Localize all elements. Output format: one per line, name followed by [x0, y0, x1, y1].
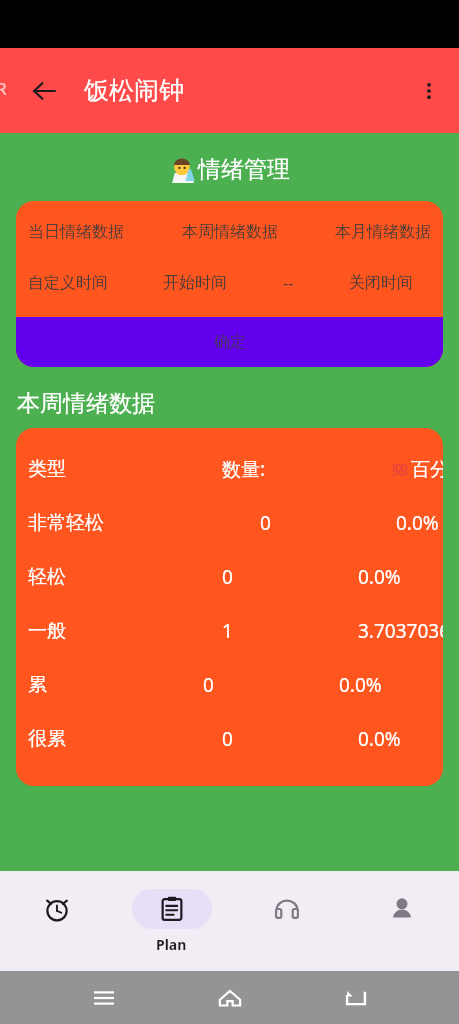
button[interactable]: 当日情绪数据 — [28, 222, 124, 242]
button[interactable]: Audio — [229, 871, 344, 971]
staticText: 饭松闹钟 — [84, 75, 184, 106]
button[interactable]: 关闭时间 — [349, 273, 413, 293]
button[interactable]: Home — [208, 976, 252, 1020]
staticText: 确定 — [214, 332, 246, 352]
staticText: 很累 — [28, 727, 66, 751]
staticText: 0.0% — [358, 564, 401, 590]
button[interactable]: Plan — [114, 871, 229, 971]
button[interactable]: More options — [407, 69, 451, 113]
staticText: R — [0, 77, 7, 100]
button[interactable]: 本月情绪数据 — [335, 222, 431, 242]
staticText: 一般 — [28, 619, 66, 643]
staticText: 非常轻松 — [28, 511, 104, 535]
staticText: 0 — [222, 564, 233, 590]
button[interactable]: 本周情绪数据 — [182, 222, 278, 242]
staticText: 累 — [28, 673, 47, 697]
staticText: 0.0% — [396, 510, 439, 536]
staticText: 0 — [203, 672, 214, 698]
staticText: 本周情绪数据 — [17, 389, 155, 418]
button[interactable]: Back — [22, 69, 66, 113]
staticText: 情绪管理 — [198, 155, 290, 184]
staticText: Plan — [156, 935, 187, 954]
staticText: 3.7037036% — [358, 618, 443, 644]
button[interactable]: 开始时间 — [163, 273, 227, 293]
button[interactable]: Back — [333, 976, 377, 1020]
staticText: 0 — [260, 510, 271, 536]
button[interactable]: 确定 — [16, 317, 443, 367]
staticText: 开始时间 — [163, 273, 227, 293]
staticText: 数量: — [222, 456, 266, 482]
staticText: 自定义时间 — [28, 273, 108, 293]
staticText: 本周情绪数据 — [182, 222, 278, 242]
staticText: -- — [283, 272, 294, 294]
staticText: 关闭时间 — [349, 273, 413, 293]
staticText: 本月情绪数据 — [335, 222, 431, 242]
staticText: 0 — [222, 726, 233, 752]
button[interactable]: Profile — [344, 871, 459, 971]
staticText: 1 — [222, 618, 233, 644]
staticText: 百分比: — [411, 456, 443, 482]
button[interactable]: Recents — [82, 976, 126, 1020]
staticText: 当日情绪数据 — [28, 222, 124, 242]
staticText: 类型 — [28, 457, 66, 481]
button[interactable]: 自定义时间 — [28, 273, 108, 293]
staticText: 0.0% — [339, 672, 382, 698]
staticText: 轻松 — [28, 565, 66, 589]
staticText: 0.0% — [358, 726, 401, 752]
button[interactable]: Alarm — [0, 871, 114, 971]
